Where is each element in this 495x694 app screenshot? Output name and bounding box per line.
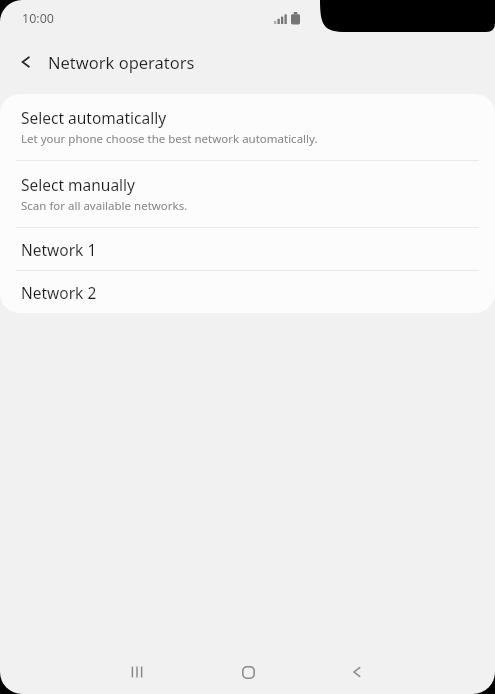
button[interactable]: Back (340, 654, 376, 690)
button[interactable]: Home (230, 654, 266, 690)
staticText: Network operators (48, 51, 195, 73)
staticText: Select manually (21, 174, 136, 195)
staticText: Select automatically (21, 107, 167, 128)
button[interactable]: Network 1 (0, 228, 495, 270)
button[interactable]: Select manually (0, 161, 495, 227)
staticText: Network 2 (21, 282, 97, 303)
button[interactable]: Network 2 (0, 271, 495, 313)
staticText: Scan for all available networks. (21, 198, 188, 214)
staticText: Network 1 (21, 239, 97, 260)
button[interactable]: Select automatically (0, 94, 495, 160)
staticText: Let your phone choose the best network a… (21, 131, 318, 147)
staticText: 10:00 (22, 10, 54, 27)
button[interactable]: Back (8, 43, 46, 81)
button[interactable]: Recent apps (119, 654, 155, 690)
